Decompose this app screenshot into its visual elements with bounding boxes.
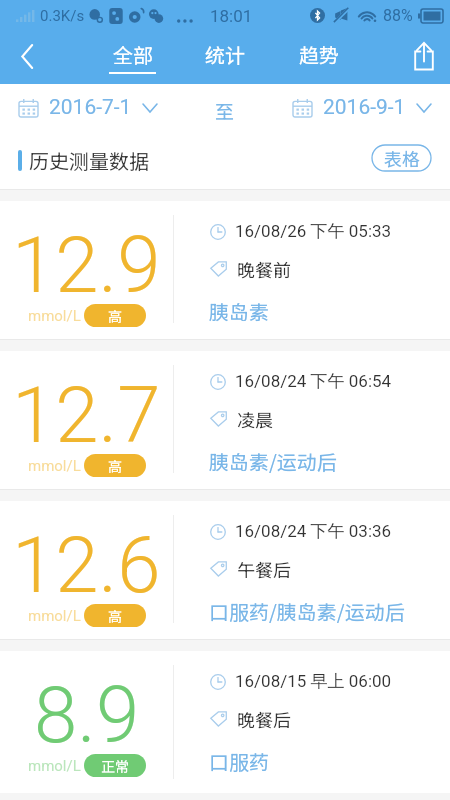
staticText: 正常 — [101, 756, 129, 776]
staticText: 2016-7-1 — [49, 95, 132, 120]
staticText: mmol/L — [28, 757, 81, 775]
button[interactable]: 趋势 — [295, 32, 342, 84]
staticText: mmol/L — [28, 307, 81, 325]
staticText: 0.3K/s — [40, 7, 85, 25]
button[interactable]: 统计 — [201, 32, 248, 84]
staticText: 高 — [108, 606, 122, 626]
button[interactable]: 表格 — [372, 145, 431, 171]
button[interactable]: 全部 — [109, 32, 156, 84]
staticText: 8.9 — [34, 670, 140, 761]
staticText: 16/08/15 早上 06:00 — [235, 671, 392, 692]
button[interactable]: 8.9 — [0, 651, 450, 793]
staticText: mmol/L — [28, 457, 81, 475]
button[interactable]: 12.7 — [0, 351, 450, 487]
staticText: mmol/L — [28, 607, 81, 625]
staticText: 12.7 — [12, 370, 161, 461]
staticText: 凌晨 — [237, 406, 273, 432]
staticText: 全部 — [113, 40, 153, 69]
staticText: 晚餐后 — [237, 706, 291, 732]
staticText: 统计 — [205, 40, 245, 69]
button[interactable]: 2016-7-1 — [19, 84, 157, 131]
staticText: 表格 — [384, 145, 420, 171]
staticText: 高 — [108, 306, 122, 326]
staticText: 高 — [108, 456, 122, 476]
staticText: 16/08/24 下午 06:54 — [235, 371, 392, 392]
button[interactable]: 2016-9-1 — [293, 84, 431, 131]
button[interactable]: Back — [0, 30, 54, 82]
staticText: 口服药 — [209, 747, 269, 776]
staticText: 口服药/胰岛素/运动后 — [209, 597, 405, 626]
staticText: 午餐后 — [237, 556, 291, 582]
staticText: 16/08/24 下午 03:36 — [235, 521, 392, 542]
staticText: 趋势 — [299, 40, 339, 69]
staticText: 16/08/26 下午 05:33 — [235, 221, 392, 242]
staticText: 胰岛素/运动后 — [209, 447, 337, 476]
button[interactable]: 12.6 — [0, 501, 450, 637]
staticText: 12.9 — [12, 220, 161, 311]
staticText: 2016-9-1 — [323, 95, 406, 120]
staticText: 历史测量数据 — [29, 146, 149, 175]
button[interactable]: 12.9 — [0, 201, 450, 337]
staticText: 晚餐前 — [237, 256, 291, 282]
staticText: 18:01 — [210, 6, 253, 26]
button[interactable]: Share — [398, 30, 450, 82]
staticText: 胰岛素 — [209, 297, 269, 326]
staticText: 至 — [215, 97, 235, 125]
staticText: 88% — [383, 6, 413, 25]
staticText: 12.6 — [12, 520, 161, 611]
